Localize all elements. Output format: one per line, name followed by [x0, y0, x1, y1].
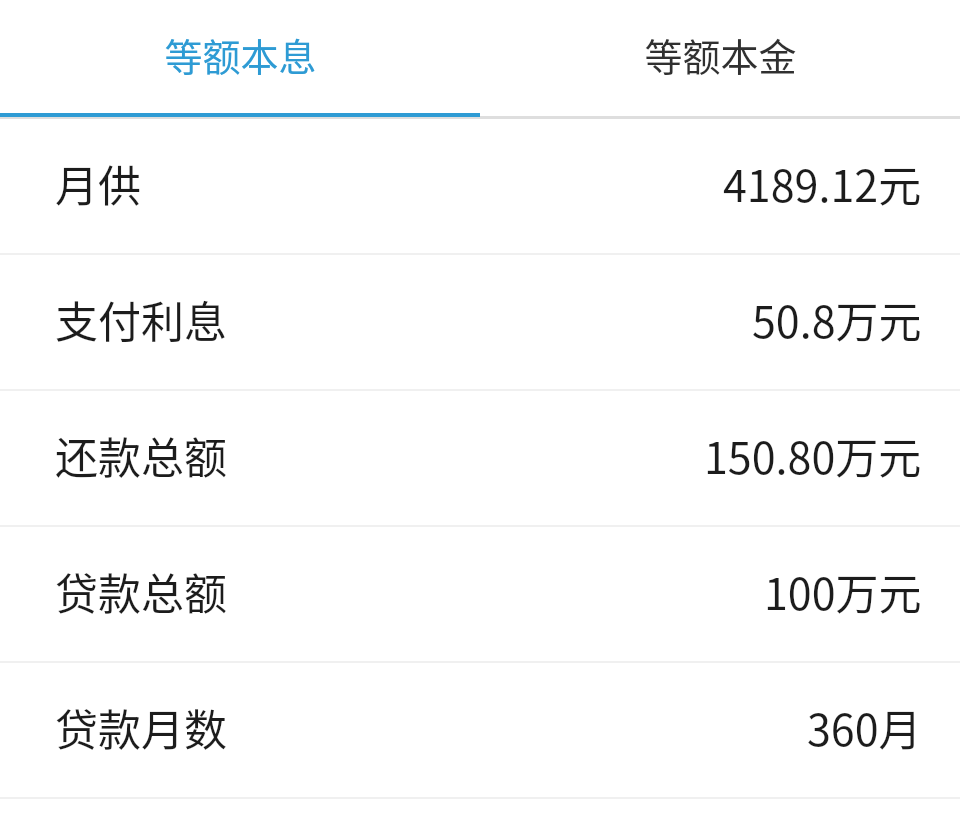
- staticText: 贷款总额: [55, 560, 227, 622]
- staticText: 50.8万元: [752, 288, 922, 350]
- staticText: 贷款月数: [55, 696, 227, 758]
- other: Repayment method tabs: [0, 0, 960, 119]
- staticText: 等额本息: [164, 27, 317, 82]
- staticText: 4189.12元: [723, 152, 922, 214]
- staticText: 150.80万元: [704, 424, 922, 486]
- staticText: 360月: [807, 696, 922, 758]
- button[interactable]: 贷款总额: [0, 527, 960, 661]
- button[interactable]: 等额本息: [0, 0, 480, 115]
- button[interactable]: 贷款月数: [0, 663, 960, 797]
- staticText: 月供: [55, 152, 141, 214]
- staticText: 100万元: [764, 560, 922, 622]
- button[interactable]: 还款总额: [0, 391, 960, 525]
- staticText: 支付利息: [55, 288, 227, 350]
- button[interactable]: 支付利息: [0, 255, 960, 389]
- button[interactable]: 等额本金: [480, 0, 960, 115]
- staticText: 等额本金: [644, 27, 797, 82]
- staticText: 还款总额: [55, 424, 227, 486]
- button[interactable]: 月供: [0, 119, 960, 253]
